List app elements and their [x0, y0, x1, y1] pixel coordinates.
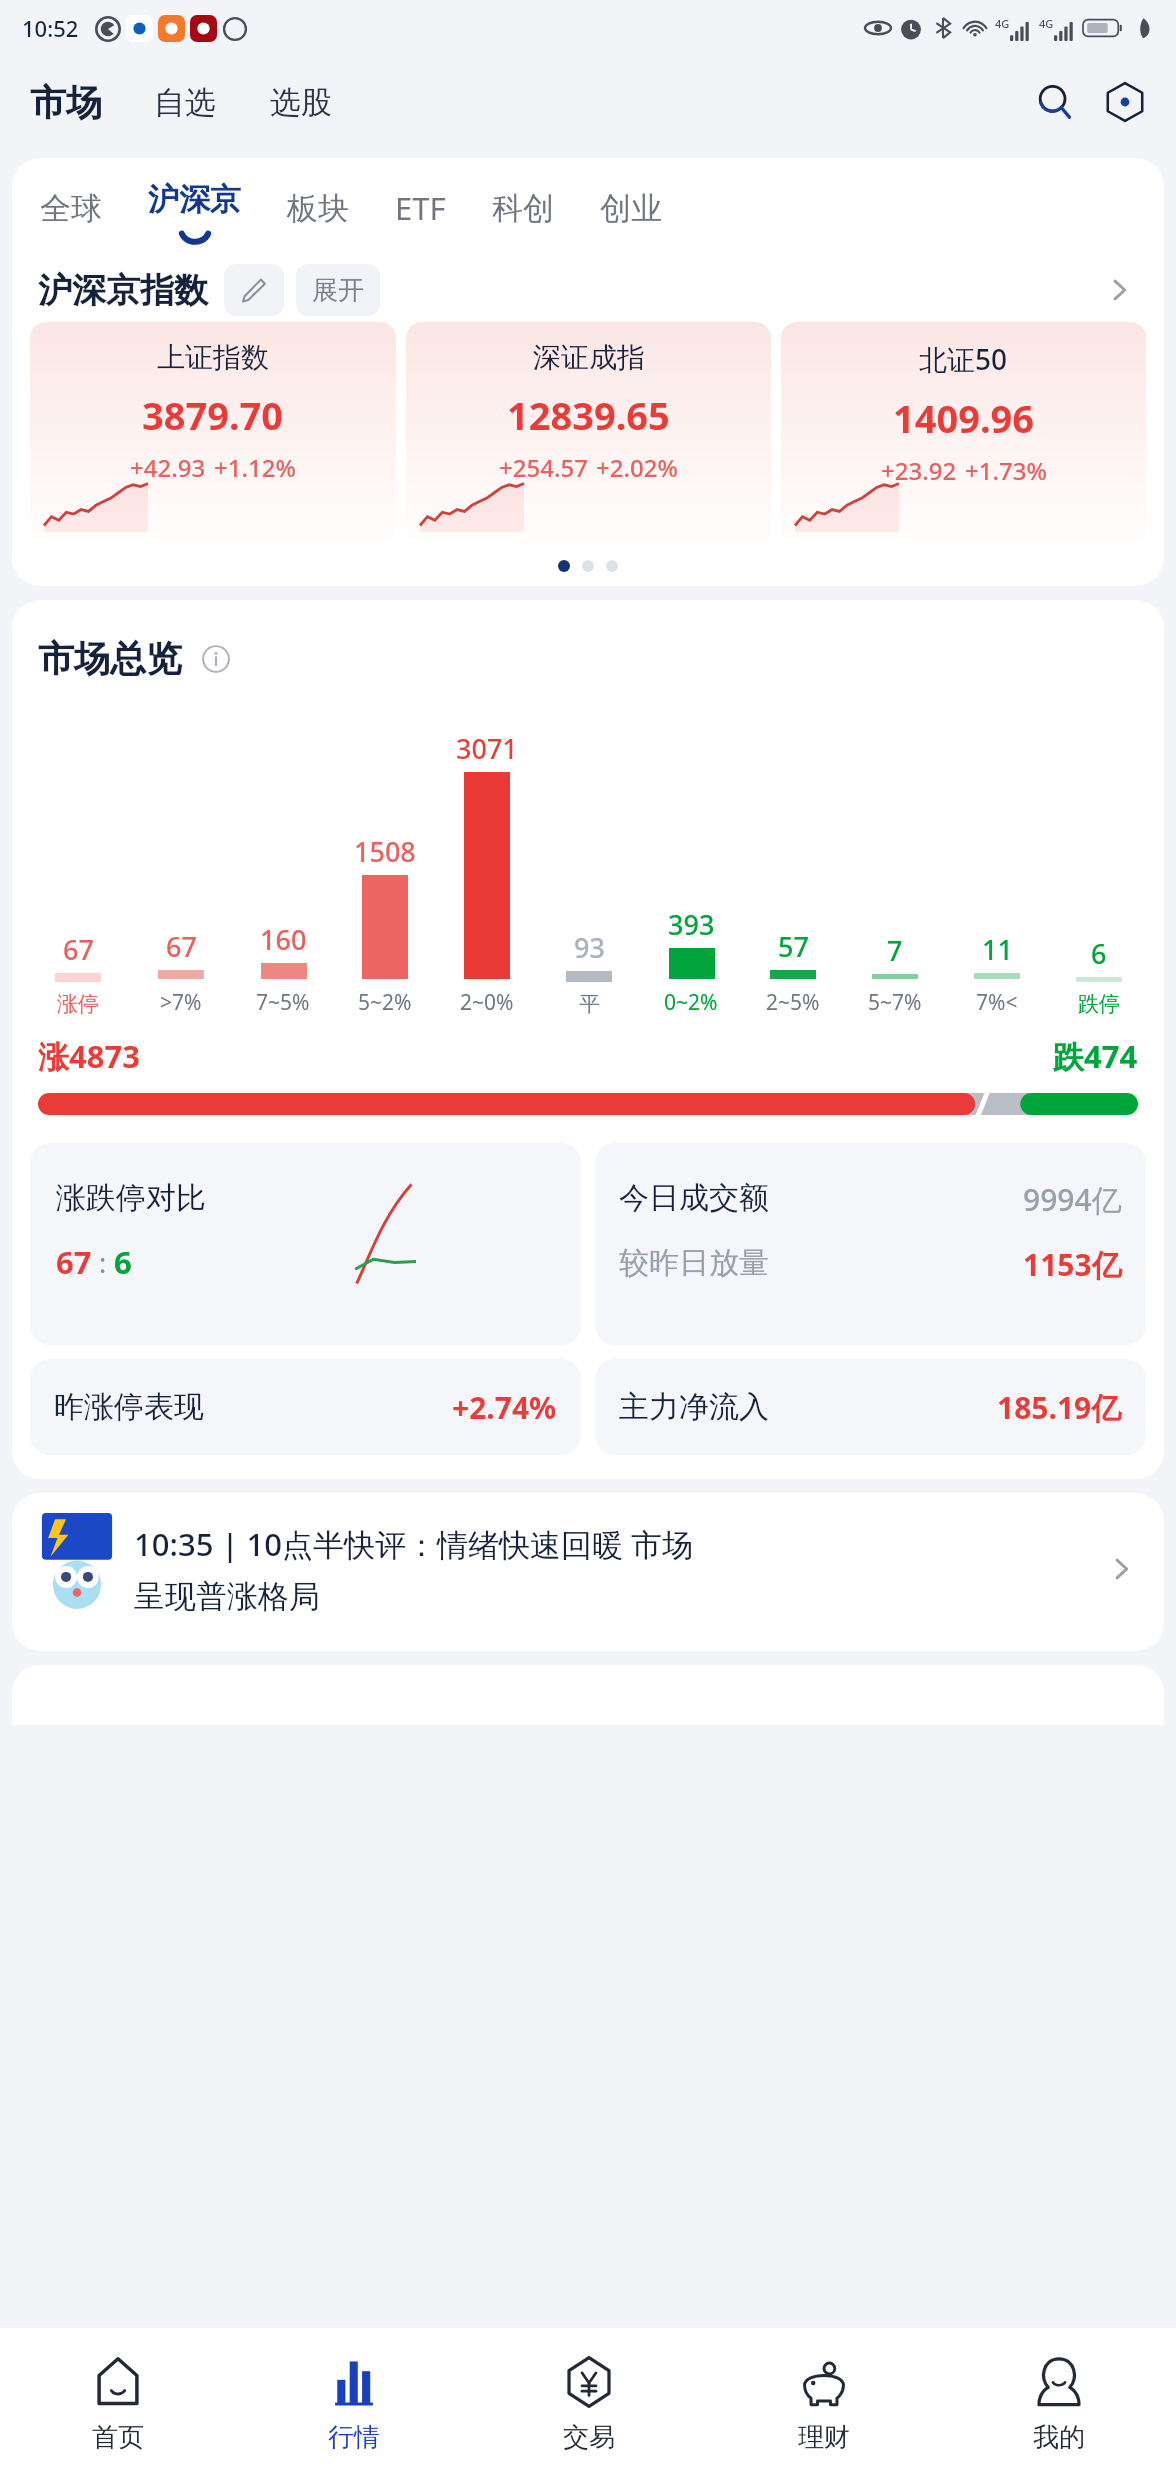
staticText: 上证指数	[157, 340, 269, 375]
staticText: 涨停	[57, 991, 99, 1017]
staticText: 93	[574, 929, 605, 966]
button[interactable]: 深证成指	[406, 322, 771, 544]
button[interactable]: 首页	[0, 2328, 236, 2480]
staticText: 6	[1091, 935, 1107, 972]
button[interactable]: 行情	[236, 2328, 471, 2480]
staticText: 1153亿	[1023, 1244, 1122, 1285]
staticText: 板块	[287, 189, 349, 228]
staticText: 57	[778, 928, 809, 965]
button[interactable]: Scan code	[1098, 75, 1152, 129]
staticText: 呈现普涨格局	[134, 1577, 320, 1616]
staticText: 2~0%	[460, 988, 514, 1017]
button[interactable]: 主力净流入	[595, 1359, 1146, 1455]
staticText: 67	[166, 928, 197, 965]
staticText: 交易	[563, 2421, 615, 2454]
staticText: 理财	[798, 2421, 850, 2454]
staticText: 沪深京	[148, 180, 241, 219]
staticText: 185.19亿	[997, 1387, 1122, 1428]
button[interactable]: ETF	[393, 187, 448, 229]
button[interactable]: 北证50	[781, 322, 1146, 544]
staticText: 市场	[30, 80, 102, 125]
staticText: 67	[56, 1241, 92, 1283]
staticText: 2~5%	[766, 988, 820, 1017]
staticText: 今日成交额	[619, 1179, 769, 1217]
staticText: 0~2%	[664, 988, 718, 1017]
button[interactable]: 沪深京	[146, 180, 243, 237]
staticText: 10:52	[22, 13, 79, 43]
staticText: 7	[887, 932, 903, 969]
button[interactable]: 展开	[296, 264, 380, 316]
staticText: 3071	[456, 730, 518, 767]
button[interactable]: 自选	[150, 77, 220, 128]
staticText: 4G	[1039, 16, 1054, 31]
staticText: 平	[579, 991, 600, 1017]
staticText: 5~2%	[358, 988, 412, 1017]
button[interactable]: 理财	[706, 2328, 941, 2480]
staticText: 67	[63, 931, 94, 968]
staticText: 7%<	[976, 988, 1018, 1017]
staticText: +1.12%	[214, 451, 296, 484]
button[interactable]: 科创	[490, 189, 556, 228]
button[interactable]: 全球	[38, 189, 104, 228]
staticText: +254.57	[499, 451, 588, 484]
staticText: 市场总览	[38, 636, 182, 681]
staticText: 创业	[600, 189, 662, 228]
staticText: 7~5%	[256, 988, 310, 1017]
staticText: 5~7%	[868, 988, 922, 1017]
staticText: 较昨日放量	[619, 1244, 769, 1282]
button[interactable]: 上证指数	[30, 322, 396, 544]
button[interactable]: 10:35 | 10点半快评：情绪快速回暖 市场	[12, 1493, 1164, 1651]
staticText: 9994亿	[1023, 1179, 1122, 1220]
staticText: +2.74%	[452, 1387, 557, 1428]
staticText: 昨涨停表现	[54, 1388, 204, 1426]
button[interactable]: Info	[196, 639, 236, 679]
staticText: 3879.70	[142, 389, 284, 441]
staticText: 展开	[312, 274, 364, 307]
button[interactable]: 板块	[285, 189, 351, 228]
staticText: 北证50	[919, 340, 1008, 378]
staticText: 跌474	[1053, 1035, 1138, 1077]
staticText: >7%	[160, 988, 202, 1017]
button[interactable]: 昨涨停表现	[30, 1359, 581, 1455]
staticText: 科创	[492, 189, 554, 228]
staticText: +1.73%	[965, 454, 1047, 487]
staticText: 选股	[270, 83, 332, 122]
staticText: 1508	[354, 833, 416, 870]
staticText: 393	[668, 906, 715, 943]
staticText: 首页	[92, 2421, 144, 2454]
button[interactable]: 选股	[266, 77, 336, 128]
button[interactable]: 交易	[471, 2328, 706, 2480]
button[interactable]: More	[1096, 267, 1142, 313]
staticText: 深证成指	[533, 340, 645, 375]
button[interactable]: 我的	[941, 2328, 1176, 2480]
staticText: 涨4873	[38, 1035, 140, 1077]
staticText: 4G	[995, 16, 1010, 31]
button[interactable]: 创业	[598, 189, 664, 228]
staticText: 自选	[154, 83, 216, 122]
staticText: 沪深京指数	[38, 269, 208, 312]
staticText: 6	[114, 1241, 132, 1283]
staticText: 160	[260, 921, 307, 958]
staticText: +42.93	[130, 451, 206, 484]
staticText: 主力净流入	[619, 1388, 769, 1426]
button[interactable]: Edit indices	[224, 264, 284, 316]
staticText: :	[92, 1244, 114, 1281]
staticText: 涨跌停对比	[56, 1179, 206, 1217]
staticText: 11	[982, 931, 1013, 968]
staticText: 全球	[40, 189, 102, 228]
staticText: ETF	[395, 187, 446, 229]
staticText: 我的	[1033, 2421, 1085, 2454]
staticText: 跌停	[1078, 991, 1120, 1017]
staticText: +23.92	[881, 454, 957, 487]
staticText: 10:35 | 10点半快评：情绪快速回暖 市场	[134, 1523, 694, 1565]
staticText: 1409.96	[893, 392, 1035, 444]
button[interactable]: 市场	[26, 74, 106, 131]
staticText: 12839.65	[507, 389, 670, 441]
button[interactable]: Search	[1028, 75, 1082, 129]
button[interactable]: 今日成交额	[595, 1143, 1146, 1345]
staticText: 行情	[328, 2421, 380, 2454]
staticText: +2.02%	[596, 451, 678, 484]
button[interactable]: 涨跌停对比	[30, 1143, 581, 1345]
